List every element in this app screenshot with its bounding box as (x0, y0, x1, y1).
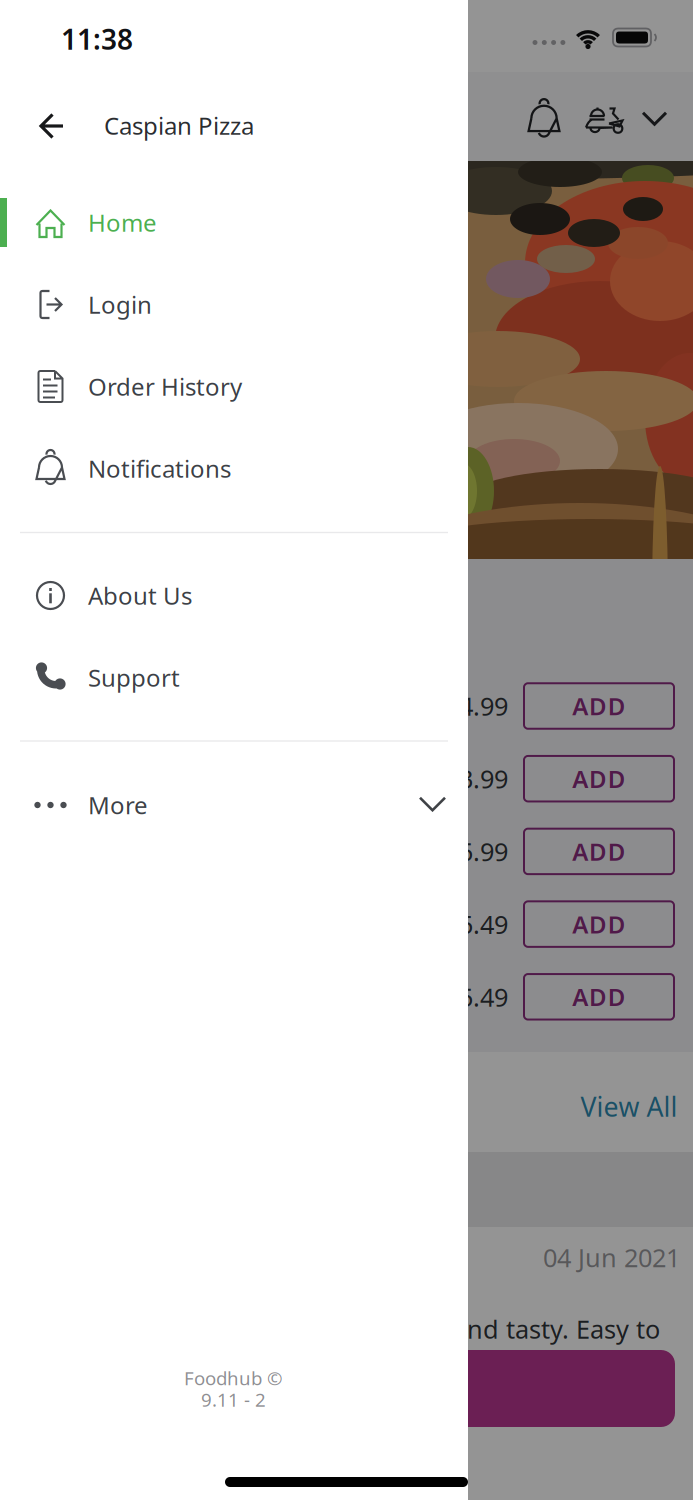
staticText: Login (88, 289, 152, 320)
staticText: Support (88, 662, 180, 693)
staticText: Home (88, 207, 157, 238)
staticText: ADD (572, 763, 626, 795)
staticText: ADD (572, 981, 626, 1013)
staticText: Order History (88, 371, 242, 402)
button[interactable]: Order History (0, 345, 468, 427)
button[interactable]: ADD (523, 755, 675, 802)
button[interactable]: ADD (523, 973, 675, 1020)
button[interactable]: Delivery (0, 0, 693, 1500)
staticText: 5.49 (459, 980, 508, 1014)
button[interactable]: Notifications (0, 427, 468, 509)
button[interactable]: Home (0, 181, 468, 263)
staticText: 5.99 (459, 835, 508, 868)
button[interactable]: ADD (523, 682, 675, 730)
staticText: Notifications (88, 453, 231, 484)
button[interactable]: Order again (245, 1350, 675, 1427)
staticText: 11:38 (61, 20, 133, 58)
button[interactable]: More (0, 764, 468, 846)
button[interactable]: Notifications (0, 0, 693, 1500)
staticText: fresh and tasty. Easy to (385, 1312, 660, 1346)
button[interactable]: Change order type (0, 0, 693, 1500)
button[interactable]: View All (477, 1089, 677, 1124)
staticText: Caspian Pizza (104, 110, 254, 141)
staticText: ADD (572, 908, 626, 940)
staticText: ADD (572, 835, 626, 867)
button[interactable]: Support (0, 636, 468, 718)
staticText: 4.99 (459, 689, 508, 723)
staticText: About Us (88, 580, 192, 611)
staticText: Foodhub © (184, 1366, 283, 1390)
staticText: 04 Jun 2021 (543, 1241, 680, 1274)
staticText: 3.99 (459, 762, 508, 795)
button[interactable]: ADD (523, 828, 675, 875)
staticText: View All (580, 1089, 677, 1124)
button[interactable]: About Us (0, 554, 468, 636)
button[interactable]: Login (0, 263, 468, 345)
staticText: 9.11 - 2 (201, 1387, 266, 1412)
staticText: More (88, 789, 148, 821)
staticText: 5.49 (459, 907, 508, 941)
button[interactable]: Back (0, 0, 693, 1500)
button[interactable]: ADD (523, 900, 675, 948)
staticText: ADD (572, 690, 626, 722)
